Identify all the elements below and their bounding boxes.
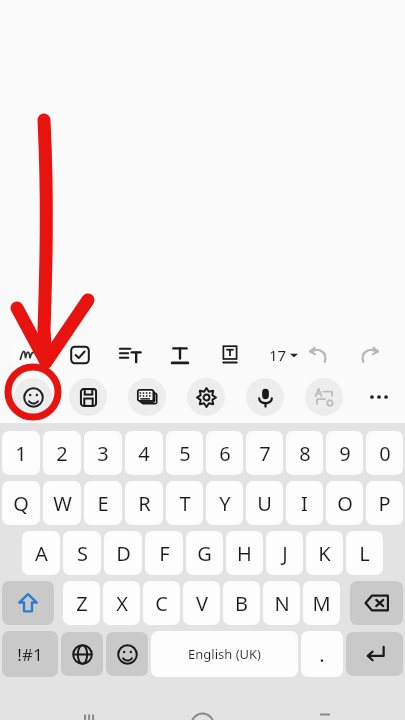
button[interactable]: Change language	[61, 632, 103, 676]
staticText: J	[282, 540, 288, 567]
button[interactable]: B	[223, 581, 260, 625]
staticText: 6	[219, 440, 231, 467]
button[interactable]: K	[306, 531, 343, 575]
button[interactable]: English (UK)	[151, 631, 298, 677]
staticText: 5	[179, 440, 191, 467]
button[interactable]: Undo	[298, 335, 338, 375]
staticText: 1	[15, 440, 27, 467]
button[interactable]: Tasks	[60, 335, 100, 375]
button[interactable]: N	[263, 581, 300, 625]
staticText: N	[274, 590, 290, 617]
staticText: K	[318, 540, 331, 567]
staticText: E	[97, 490, 109, 517]
button[interactable]: T	[166, 481, 203, 525]
button[interactable]: U	[246, 481, 283, 525]
button[interactable]: Y	[206, 481, 243, 525]
button[interactable]: C	[143, 581, 180, 625]
staticText: Q	[13, 490, 29, 517]
staticText: R	[138, 490, 151, 517]
button[interactable]: A	[22, 531, 60, 575]
staticText: !#1	[17, 643, 43, 666]
staticText: L	[359, 540, 370, 567]
button[interactable]: Redo	[350, 335, 390, 375]
button[interactable]: Settings	[187, 378, 225, 416]
button[interactable]: R	[125, 481, 163, 525]
staticText: I	[301, 490, 308, 517]
button[interactable]: Shift	[2, 581, 54, 625]
button[interactable]: F	[145, 531, 183, 575]
staticText: O	[337, 490, 353, 517]
staticText: C	[155, 590, 168, 617]
button[interactable]: O	[326, 481, 363, 525]
staticText: B	[235, 590, 248, 617]
button[interactable]: V	[183, 581, 220, 625]
button[interactable]: More options	[357, 375, 401, 419]
button[interactable]: 8	[286, 431, 323, 475]
button[interactable]: 0	[366, 431, 403, 475]
button[interactable]: I	[286, 481, 323, 525]
button[interactable]: 7	[246, 431, 283, 475]
staticText: T	[179, 490, 191, 517]
button[interactable]: S	[63, 531, 101, 575]
staticText: G	[197, 540, 212, 567]
staticText: 17	[269, 345, 287, 365]
button[interactable]: Enter	[346, 632, 403, 676]
button[interactable]: 3	[84, 431, 122, 475]
staticText: W	[53, 490, 72, 517]
button[interactable]: G	[186, 531, 223, 575]
button[interactable]: Keyboard modes	[128, 378, 166, 416]
staticText: Z	[76, 590, 88, 617]
staticText: .	[319, 641, 325, 668]
staticText: Y	[219, 490, 231, 517]
button[interactable]: 9	[326, 431, 363, 475]
button[interactable]: 1	[2, 431, 40, 475]
button[interactable]: Text format	[160, 335, 200, 375]
staticText: V	[196, 590, 208, 617]
staticText: F	[159, 540, 170, 567]
staticText: S	[77, 540, 88, 567]
staticText: U	[257, 490, 272, 517]
staticText: H	[237, 540, 252, 567]
button[interactable]: Z	[63, 581, 100, 625]
button[interactable]: 4	[125, 431, 163, 475]
staticText: D	[116, 540, 131, 567]
button[interactable]: !#1	[2, 631, 58, 677]
button[interactable]: J	[266, 531, 303, 575]
button[interactable]: W	[43, 481, 81, 525]
button[interactable]: 5	[166, 431, 203, 475]
staticText: 3	[97, 440, 109, 467]
button[interactable]: .	[301, 631, 343, 677]
staticText: 2	[56, 440, 68, 467]
button[interactable]: Q	[2, 481, 40, 525]
staticText: 7	[259, 440, 271, 467]
button[interactable]: M	[303, 581, 340, 625]
button[interactable]: E	[84, 481, 122, 525]
staticText: English (UK)	[188, 645, 261, 663]
button[interactable]: Emoji	[14, 378, 52, 416]
staticText: M	[312, 590, 331, 617]
button[interactable]: Paragraph	[110, 335, 150, 375]
button[interactable]: Translate	[305, 378, 343, 416]
button[interactable]: 2	[43, 431, 81, 475]
staticText: 4	[138, 440, 150, 467]
button[interactable]: 17	[258, 335, 308, 375]
button[interactable]: Emoji	[106, 632, 148, 676]
staticText: 8	[299, 440, 311, 467]
button[interactable]: Clipboard	[69, 378, 107, 416]
button[interactable]: L	[346, 531, 383, 575]
button[interactable]: 6	[206, 431, 243, 475]
button[interactable]: P	[366, 481, 403, 525]
button[interactable]: Text box	[210, 335, 250, 375]
button[interactable]: D	[104, 531, 142, 575]
staticText: 0	[379, 440, 391, 467]
staticText: P	[378, 490, 391, 517]
staticText: X	[116, 590, 128, 617]
button[interactable]: Voice input	[246, 378, 284, 416]
button[interactable]: H	[226, 531, 263, 575]
button[interactable]: Backspace	[350, 581, 403, 625]
staticText: 9	[339, 440, 351, 467]
button[interactable]: X	[103, 581, 140, 625]
button[interactable]: Handwriting	[10, 337, 46, 373]
staticText: A	[35, 540, 48, 567]
